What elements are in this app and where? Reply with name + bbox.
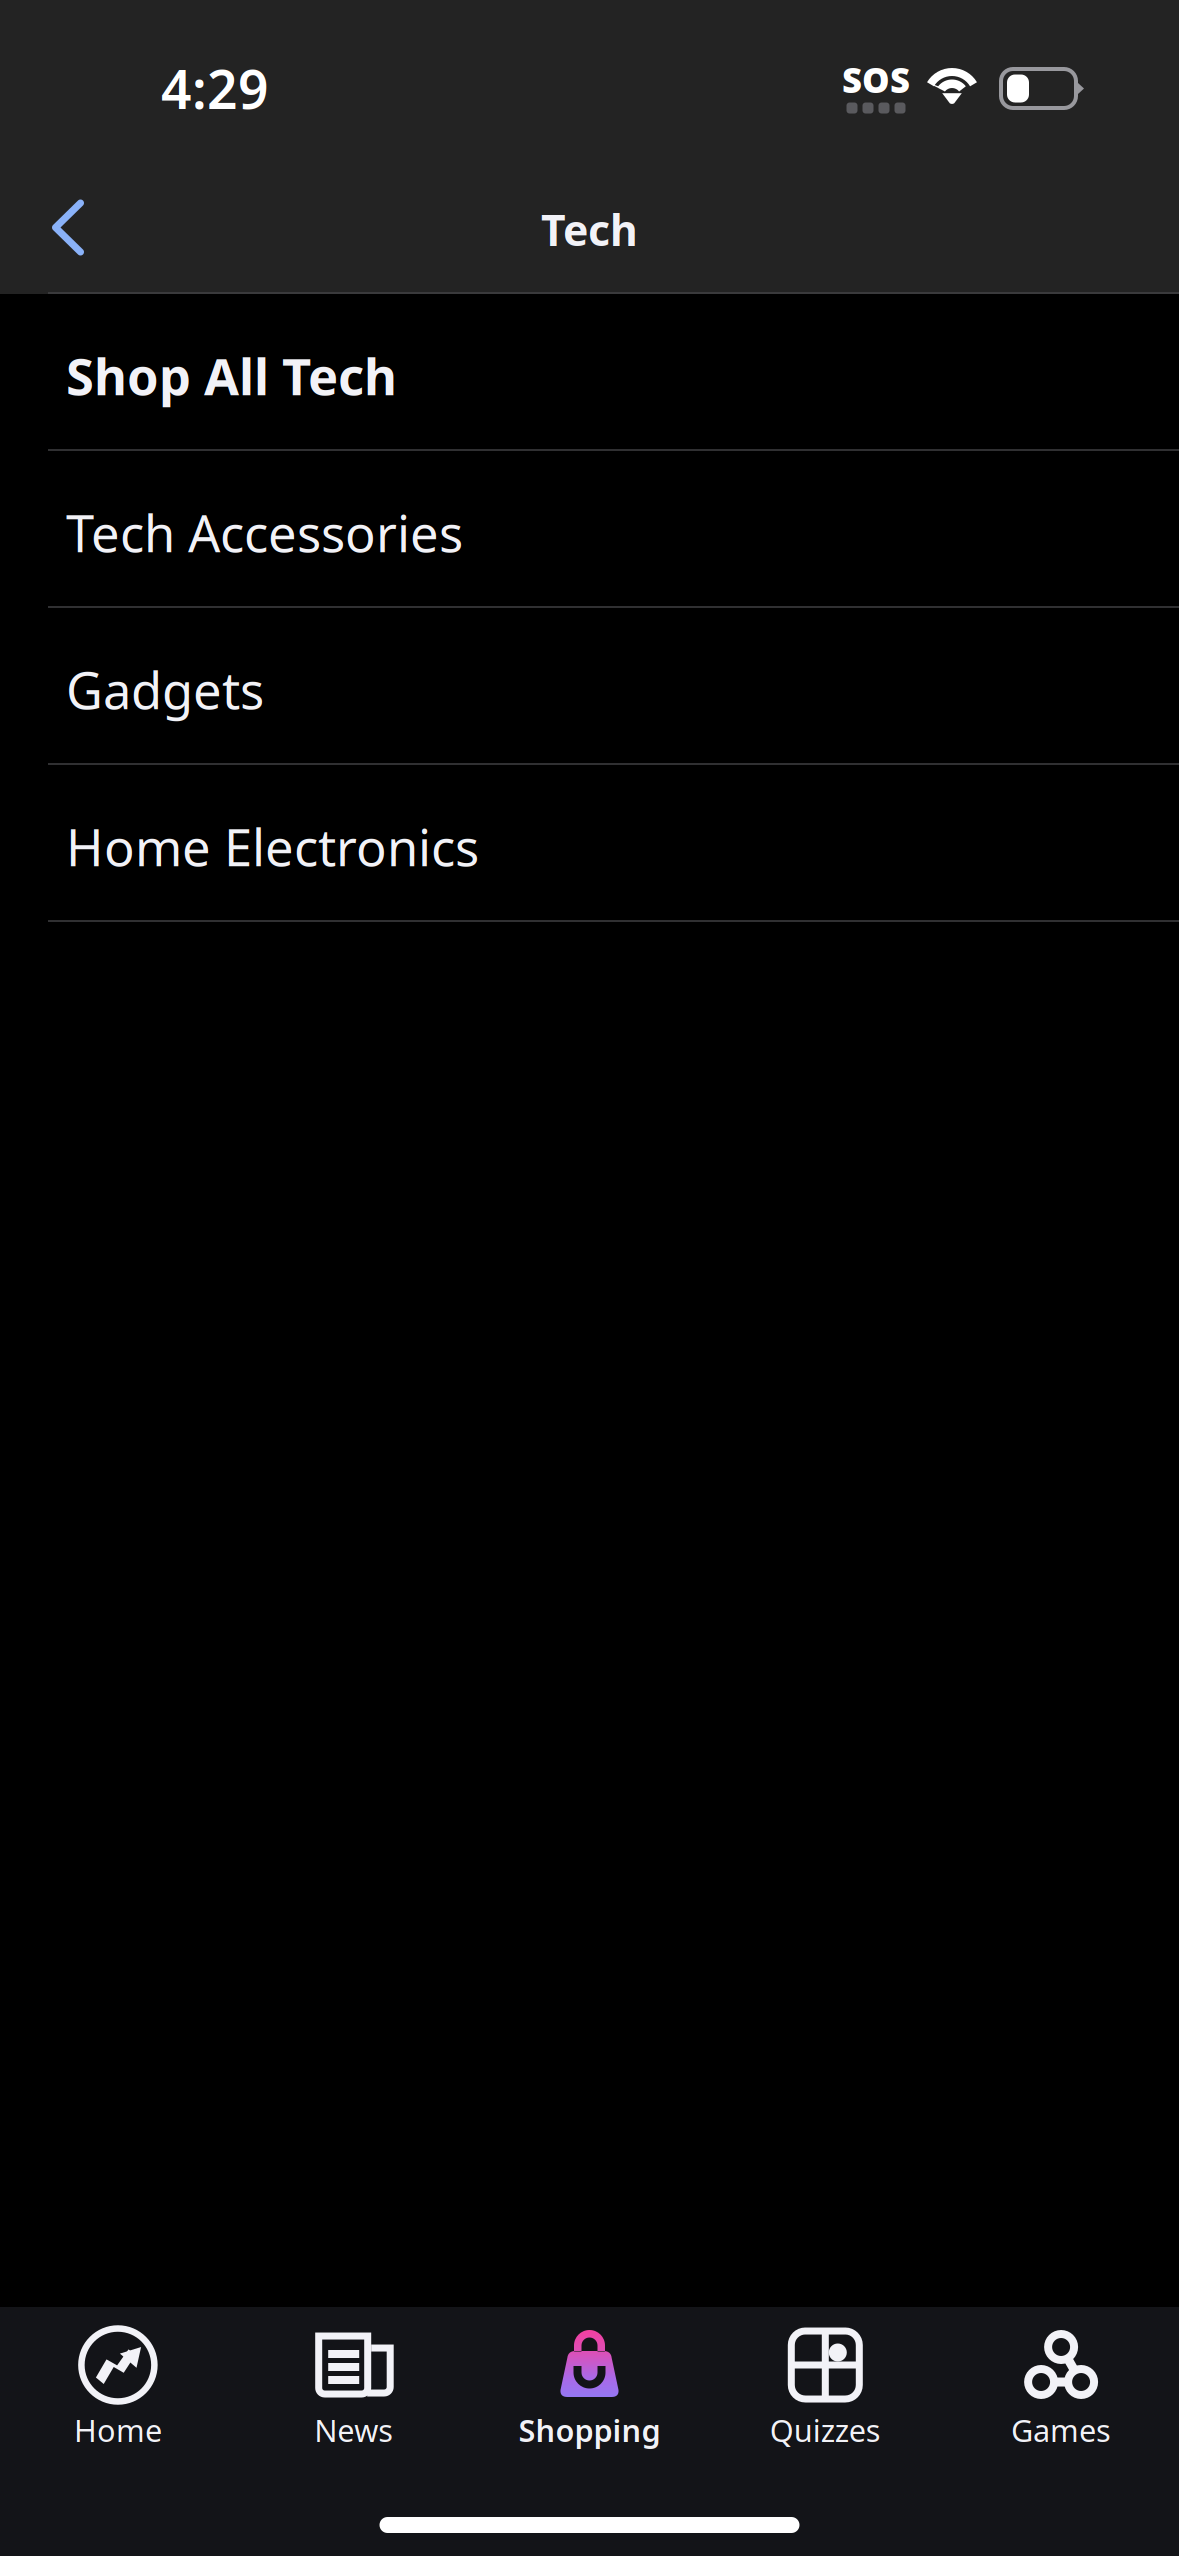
- staticText: Home Electronics: [66, 813, 479, 880]
- button[interactable]: Games: [943, 2307, 1179, 2450]
- button[interactable]: Shop All Tech: [0, 294, 1179, 451]
- button[interactable]: Gadgets: [0, 608, 1179, 765]
- staticText: Tech: [541, 201, 638, 258]
- button[interactable]: Quizzes: [707, 2307, 943, 2450]
- staticText: Quizzes: [770, 2410, 881, 2450]
- staticText: Games: [1011, 2410, 1111, 2450]
- staticText: 4:29: [161, 53, 269, 124]
- button[interactable]: Home Electronics: [0, 765, 1179, 922]
- staticText: News: [314, 2410, 393, 2450]
- button[interactable]: News: [236, 2307, 472, 2450]
- staticText: Shopping: [518, 2410, 660, 2450]
- button[interactable]: Shopping: [472, 2307, 707, 2450]
- button[interactable]: Tech Accessories: [0, 451, 1179, 608]
- staticText: Home: [74, 2410, 162, 2450]
- staticText: Shop All Tech: [66, 342, 397, 409]
- staticText: SOS: [842, 56, 910, 102]
- button[interactable]: Back: [0, 161, 110, 277]
- staticText: Gadgets: [66, 656, 264, 723]
- button[interactable]: Home: [0, 2307, 236, 2450]
- staticText: Tech Accessories: [66, 499, 463, 566]
